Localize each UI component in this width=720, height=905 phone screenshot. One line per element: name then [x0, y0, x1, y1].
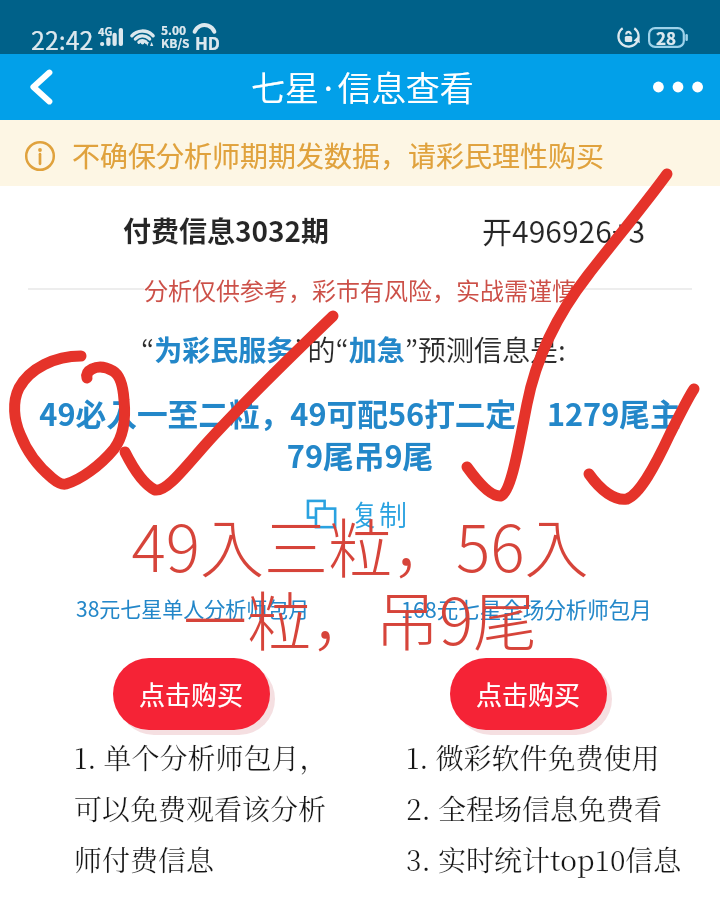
button[interactable]: More options [636, 54, 720, 120]
staticText: 开496926+3 [482, 208, 646, 251]
staticText: 5.00 [161, 21, 187, 38]
staticText: 49必入一至二粒，49可配56打二定，1279尾主 79尾吊9尾 [0, 390, 720, 477]
staticText: 1. 单个分析师包月， 可以免费观看该分析 师付费信息 [74, 737, 328, 879]
staticText: HD [195, 30, 221, 55]
staticText: 49入三粒，56入 一粒，吊9尾 [0, 498, 720, 664]
staticText: 付费信息3032期 [123, 210, 330, 251]
button[interactable]: 点击购买 [113, 658, 270, 730]
staticText: “为彩民服务”的“加急”预测信息是: [141, 329, 566, 370]
staticText: 168元七星全场分析师包月 [401, 593, 652, 624]
staticText: 点击购买 [139, 675, 244, 713]
staticText: 1. 微彩软件免费使用 2. 全程场信息免费看 3. 实时统计top10信息 [406, 737, 682, 879]
staticText: 22:42 [31, 21, 94, 57]
button[interactable]: 复制 [303, 491, 412, 538]
staticText: KB/S [161, 34, 190, 51]
staticText: 28 [656, 25, 677, 50]
staticText: 分析仅供参考，彩市有风险，实战需谨慎 [144, 272, 576, 307]
staticText: 七星·信息查看 [251, 62, 474, 111]
staticText: 4G [98, 23, 113, 39]
button[interactable]: Back [0, 54, 82, 120]
staticText: 38元七星单人分析师包月 [76, 593, 310, 623]
button[interactable]: 点击购买 [450, 658, 607, 730]
staticText: 不确保分析师期期发数据，请彩民理性购买 [72, 135, 605, 176]
staticText: 点击购买 [476, 675, 581, 713]
staticText: 复制 [351, 494, 408, 535]
